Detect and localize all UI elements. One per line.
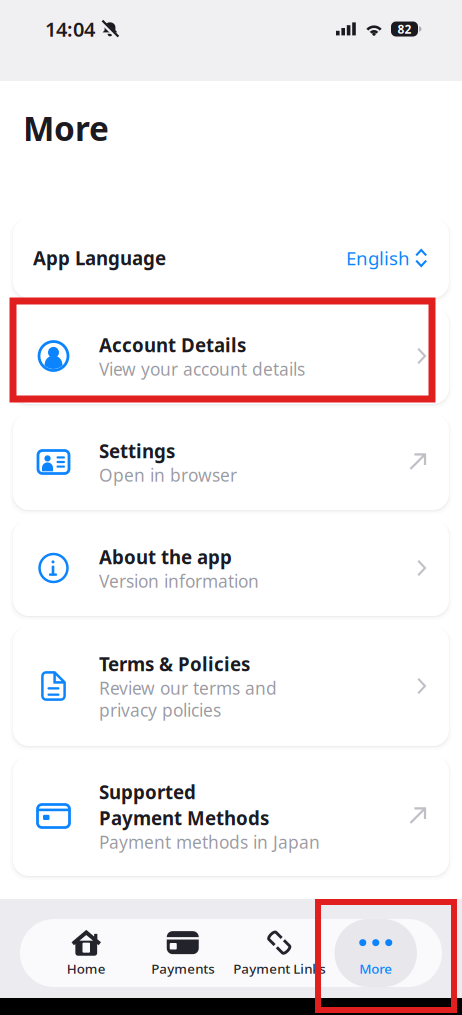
button[interactable]: Account Details (13, 308, 449, 404)
button[interactable]: Supported (13, 756, 449, 876)
staticText: Payment Links (233, 960, 325, 977)
staticText: Version information (99, 569, 259, 592)
staticText: App Language (33, 246, 166, 270)
button[interactable]: Home (38, 919, 134, 987)
button[interactable]: Payment Links (231, 919, 327, 987)
staticText: Terms & Policies (99, 652, 250, 676)
staticText: View your account details (99, 357, 305, 380)
staticText: 14:04 (45, 16, 95, 42)
staticText: More (359, 960, 392, 977)
staticText: Payments (151, 960, 214, 977)
staticText: More (23, 106, 109, 150)
staticText: Settings (99, 439, 175, 463)
staticText: About the app (99, 545, 232, 569)
staticText: Review our terms and (99, 676, 277, 699)
button[interactable]: Terms & Policies (13, 626, 449, 746)
staticText: Open in browser (99, 463, 237, 486)
button[interactable]: Payments (134, 919, 231, 987)
staticText: Payment Methods (99, 806, 269, 830)
button[interactable]: Settings (13, 414, 449, 510)
staticText: Account Details (99, 333, 246, 357)
staticText: Home (67, 960, 106, 977)
button[interactable]: App Language (13, 218, 449, 298)
staticText: Payment methods in Japan (99, 830, 320, 853)
button[interactable]: About the app (13, 520, 449, 616)
staticText: 82 (397, 21, 411, 37)
staticText: Supported (99, 780, 196, 804)
button[interactable]: More (327, 919, 424, 987)
staticText: English (346, 246, 410, 270)
staticText: privacy policies (99, 698, 221, 721)
